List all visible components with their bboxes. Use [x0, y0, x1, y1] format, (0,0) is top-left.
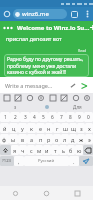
button[interactable]: Keyboard tool 5: [58, 93, 69, 103]
button[interactable]: ч: [19, 145, 27, 155]
button[interactable]: Keyboard tool 1: [12, 93, 23, 103]
button[interactable]: 8: [66, 112, 75, 122]
staticText: ы: [11, 136, 16, 143]
button[interactable]: Backspace: [83, 145, 93, 155]
button[interactable]: з: [77, 123, 85, 133]
staticText: г: [56, 125, 59, 132]
staticText: winz6.me: [22, 10, 49, 18]
staticText: ж: [79, 136, 84, 143]
button[interactable]: ,: [14, 156, 24, 166]
button[interactable]: .: [69, 156, 79, 166]
button[interactable]: 3: [20, 112, 30, 122]
button[interactable]: Tabs: [67, 7, 81, 21]
button[interactable]: Back: [0, 186, 31, 200]
button[interactable]: 5: [39, 112, 48, 122]
button[interactable]: Keyboard tool 7: [81, 93, 92, 103]
button[interactable]: в: [18, 134, 27, 144]
staticText: Для: [73, 104, 82, 110]
button[interactable]: щ: [69, 123, 77, 133]
button[interactable]: ш: [61, 123, 69, 133]
button[interactable]: [31, 103, 62, 111]
button[interactable]: з: [0, 103, 31, 111]
button[interactable]: э: [85, 134, 93, 144]
button[interactable]: и: [43, 145, 51, 155]
staticText: з: [14, 104, 17, 110]
button[interactable]: я: [11, 145, 19, 155]
button[interactable]: н: [45, 123, 53, 133]
button[interactable]: ь: [59, 145, 67, 155]
button[interactable]: д: [69, 134, 77, 144]
button[interactable]: Keyboard tool 6: [70, 93, 81, 103]
button[interactable]: 4: [30, 112, 39, 122]
staticText: ь: [62, 147, 65, 154]
staticText: ц: [12, 125, 16, 132]
button[interactable]: т: [51, 145, 59, 155]
button[interactable]: к: [27, 123, 36, 133]
button[interactable]: Keyboard tool 4: [47, 93, 58, 103]
button[interactable]: 0: [84, 112, 93, 122]
button[interactable]: с: [27, 145, 35, 155]
button[interactable]: л: [61, 134, 69, 144]
button[interactable]: р: [45, 134, 53, 144]
staticText: ,: [18, 158, 20, 165]
button[interactable]: г: [53, 123, 61, 133]
staticText: 5: [42, 114, 45, 121]
button[interactable]: Русский: [24, 156, 69, 166]
button[interactable]: ц: [9, 123, 18, 133]
button[interactable]: й: [0, 123, 9, 133]
staticText: м: [37, 147, 42, 154]
button[interactable]: More options: [81, 7, 93, 21]
staticText: Русский: [38, 158, 55, 164]
button[interactable]: ?123: [0, 156, 14, 166]
staticText: 3: [24, 114, 27, 121]
button[interactable]: winz6.me: [13, 9, 67, 19]
button[interactable]: у: [18, 123, 27, 133]
button[interactable]: 2: [10, 112, 20, 122]
staticText: я: [13, 147, 17, 154]
staticText: 0: [87, 114, 90, 121]
staticText: х: [88, 125, 91, 132]
staticText: щ: [71, 125, 76, 132]
staticText: а: [30, 136, 34, 143]
staticText: п: [39, 136, 43, 143]
button[interactable]: Minimize: [90, 23, 93, 32]
button[interactable]: ы: [9, 134, 18, 144]
button[interactable]: Shift: [0, 145, 11, 155]
staticText: ф: [2, 136, 7, 143]
button[interactable]: Keyboard tool 2: [24, 93, 35, 103]
button[interactable]: м: [35, 145, 43, 155]
button[interactable]: Recent apps: [62, 186, 93, 200]
button[interactable]: а: [27, 134, 36, 144]
button[interactable]: Attach file: [68, 81, 77, 90]
button[interactable]: ф: [0, 134, 9, 144]
button[interactable]: о: [53, 134, 61, 144]
button[interactable]: Home: [0, 7, 13, 21]
button[interactable]: ю: [75, 145, 83, 155]
staticText: Радно буду по другому решать, проблему м…: [7, 56, 86, 75]
button[interactable]: Send message: [79, 156, 93, 166]
staticText: 7: [60, 114, 63, 121]
button[interactable]: ж: [77, 134, 85, 144]
staticText: и: [45, 147, 49, 154]
staticText: з: [80, 125, 83, 132]
button[interactable]: п: [36, 134, 45, 144]
staticText: Welcome to Winz.io Su...: [17, 24, 90, 32]
staticText: р: [47, 136, 51, 143]
button[interactable]: 9: [75, 112, 84, 122]
button[interactable]: 1: [0, 112, 10, 122]
button[interactable]: Для: [62, 103, 93, 111]
button[interactable]: 6: [48, 112, 57, 122]
button[interactable]: Home: [31, 186, 62, 200]
button[interactable]: Keyboard tool 3: [35, 93, 46, 103]
button[interactable]: б: [67, 145, 75, 155]
staticText: ш: [63, 125, 68, 132]
button[interactable]: х: [85, 123, 93, 133]
staticText: ч: [21, 147, 25, 154]
staticText: э: [88, 136, 91, 143]
button[interactable]: Send: [79, 81, 88, 90]
button[interactable]: Keyboard tool 0: [1, 93, 12, 103]
button[interactable]: 7: [57, 112, 66, 122]
staticText: .: [73, 158, 75, 165]
button[interactable]: е: [36, 123, 45, 133]
staticText: 9: [78, 114, 81, 121]
